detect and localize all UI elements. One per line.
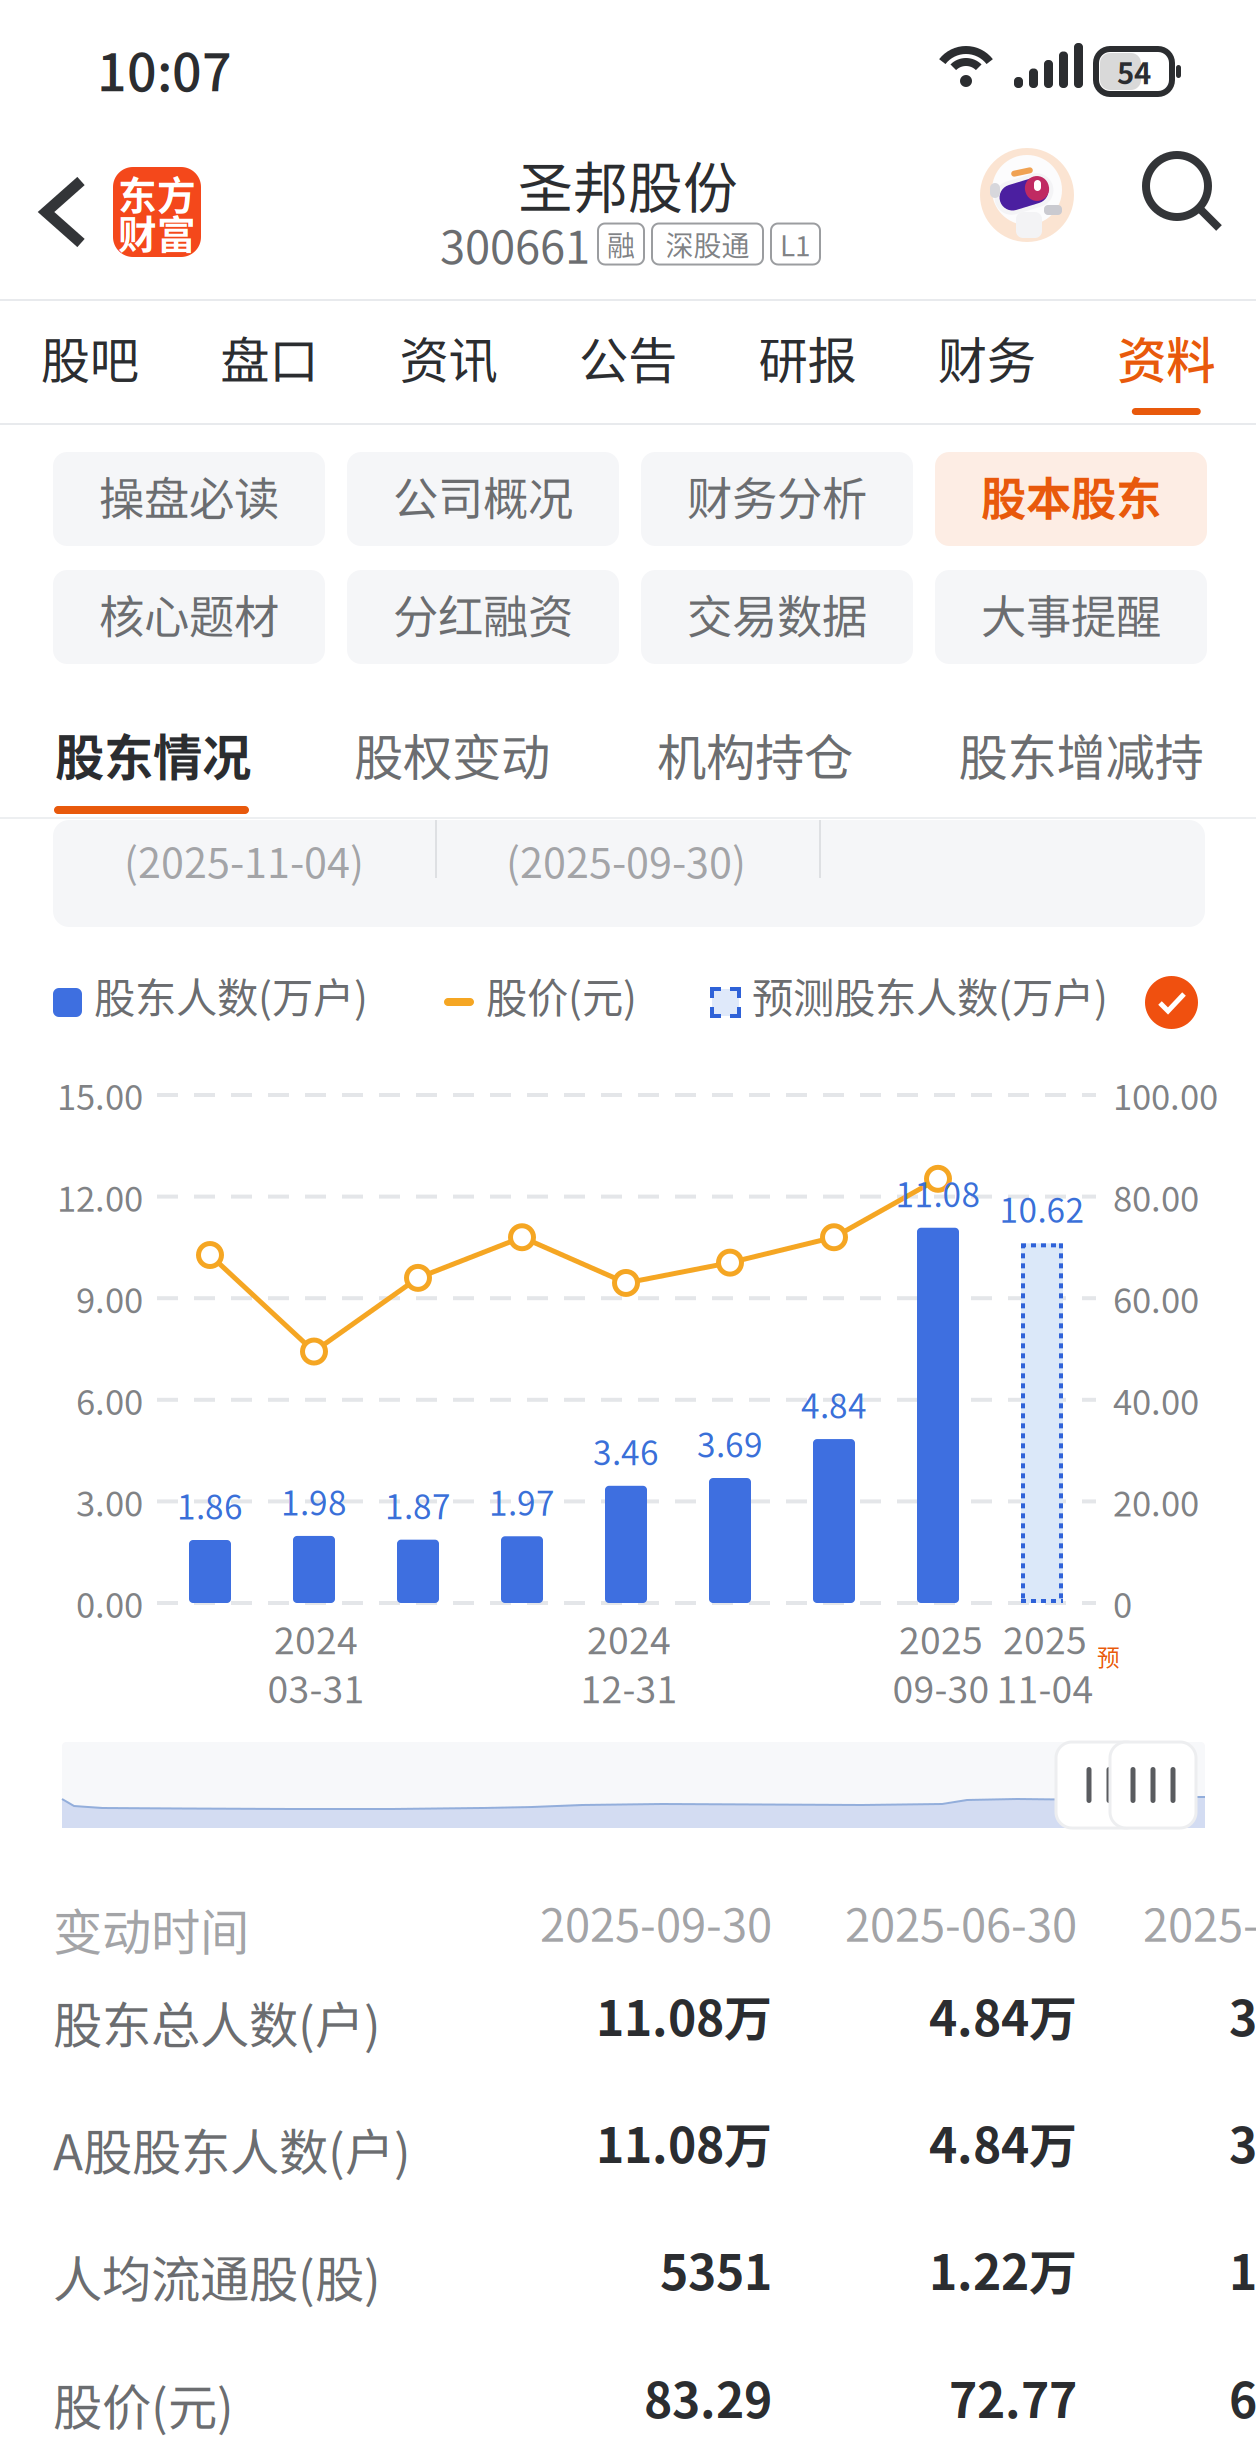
staticText: 股价(元) [53, 2368, 234, 2439]
staticText: 80.00 [1113, 1171, 1199, 1222]
staticText: L1 [780, 224, 811, 264]
staticText: 操盘必读 [99, 463, 279, 529]
staticText: (2025-11-04) [124, 830, 364, 890]
button[interactable]: 公告 [538, 301, 718, 423]
staticText: 财务 [938, 321, 1036, 393]
button[interactable]: 分红融资 [347, 570, 619, 664]
staticText: 公司概况 [393, 463, 573, 529]
staticText: 2025-06-30 [845, 1889, 1077, 1955]
staticText: 11-04 [996, 1660, 1093, 1714]
staticText: 公告 [579, 321, 677, 393]
staticText: 300661 [440, 211, 590, 277]
staticText: 机构持仓 [657, 718, 853, 790]
button[interactable]: 机构持仓 [655, 724, 855, 828]
staticText: 分红融资 [393, 581, 573, 647]
button[interactable]: East Money home [113, 167, 201, 257]
staticText: A股股东人数(户) [53, 2113, 411, 2184]
staticText: 2025 [899, 1611, 983, 1665]
staticText: 财富 [118, 204, 196, 260]
staticText: 预测股东人数(万户) [752, 965, 1108, 1025]
staticText: 融 [607, 224, 635, 264]
staticText: 3 [1229, 1980, 1256, 2050]
staticText: 0.00 [76, 1578, 143, 1628]
staticText: 变动时间 [53, 1893, 249, 1964]
button[interactable]: 研报 [718, 301, 897, 423]
button[interactable]: Assistant [980, 148, 1074, 242]
staticText: 0 [1113, 1578, 1132, 1628]
button[interactable]: Range end handle [1110, 1742, 1196, 1828]
staticText: 股权变动 [354, 718, 550, 790]
staticText: 股吧 [41, 321, 139, 393]
staticText: 1.97 [489, 1477, 555, 1525]
staticText: 03-31 [267, 1660, 364, 1714]
button[interactable]: 盘口 [179, 301, 359, 423]
staticText: 股东增减持 [958, 718, 1203, 790]
staticText: 12-31 [580, 1660, 677, 1714]
button[interactable]: Toggle forecast series [1145, 976, 1198, 1029]
staticText: 2024 [274, 1611, 358, 1665]
button[interactable]: 股权变动 [352, 724, 552, 828]
staticText: 6 [1229, 2362, 1256, 2432]
button[interactable]: 大事提醒 [935, 570, 1207, 664]
staticText: 40.00 [1113, 1375, 1199, 1425]
staticText: 20.00 [1113, 1476, 1199, 1526]
staticText: 盘口 [220, 321, 318, 393]
staticText: 11.08万 [596, 2107, 772, 2177]
staticText: 大事提醒 [981, 581, 1161, 647]
staticText: 12.00 [57, 1171, 143, 1222]
staticText: 3.46 [593, 1427, 659, 1475]
staticText: 人均流通股(股) [53, 2240, 381, 2311]
staticText: (2025-09-30) [506, 830, 746, 890]
button[interactable]: 核心题材 [53, 570, 325, 664]
staticText: 100.00 [1113, 1070, 1218, 1120]
staticText: 10.62 [999, 1184, 1084, 1232]
staticText: 9.00 [76, 1273, 143, 1323]
staticText: 2025-09-30 [540, 1889, 772, 1955]
button[interactable]: 股东增减持 [955, 724, 1207, 828]
button[interactable]: Back [18, 165, 102, 249]
staticText: 4.84 [801, 1380, 867, 1428]
staticText: 2025 [1003, 1611, 1087, 1665]
staticText: 72.77 [949, 2362, 1077, 2432]
staticText: 1.87 [385, 1480, 451, 1529]
staticText: 1.86 [177, 1481, 243, 1529]
button[interactable]: Range start handle [1056, 1742, 1142, 1828]
staticText: 资料 [1117, 321, 1215, 393]
staticText: 研报 [758, 321, 856, 393]
staticText: 股本股东 [981, 463, 1161, 529]
button[interactable]: 操盘必读 [53, 452, 325, 546]
staticText: 10:07 [97, 31, 232, 106]
button[interactable]: 股东情况 [53, 724, 253, 828]
staticText: 83.29 [644, 2362, 772, 2432]
staticText: 5351 [660, 2234, 772, 2304]
staticText: 1 [1229, 2234, 1256, 2304]
button[interactable]: 财务 [897, 301, 1076, 423]
button[interactable]: 资讯 [359, 301, 538, 423]
staticText: 1.22万 [929, 2234, 1077, 2304]
staticText: 4.84万 [929, 2107, 1077, 2177]
staticText: 2025- [1143, 1889, 1256, 1955]
button[interactable]: 资料 [1077, 301, 1256, 423]
staticText: 核心题材 [99, 581, 279, 647]
staticText: 资讯 [400, 321, 498, 393]
button[interactable]: 股吧 [0, 301, 179, 423]
button[interactable]: 财务分析 [641, 452, 913, 546]
staticText: 3.69 [697, 1419, 763, 1467]
staticText: 财务分析 [687, 463, 867, 529]
staticText: 11.08万 [596, 1980, 772, 2050]
staticText: 2024 [587, 1611, 671, 1665]
staticText: 深股通 [665, 224, 749, 264]
button[interactable]: 公司概况 [347, 452, 619, 546]
staticText: 11.08 [895, 1169, 980, 1217]
staticText: 圣邦股份 [518, 144, 738, 224]
staticText: 15.00 [57, 1070, 143, 1120]
staticText: 1.98 [281, 1477, 347, 1525]
staticText: 60.00 [1113, 1273, 1199, 1323]
staticText: 3 [1229, 2107, 1256, 2177]
staticText: 09-30 [892, 1660, 989, 1714]
button[interactable]: 交易数据 [641, 570, 913, 664]
staticText: 东方 [118, 165, 196, 221]
button[interactable]: Search [1146, 155, 1222, 231]
staticText: 股东情况 [55, 718, 251, 790]
button[interactable]: 股本股东 [935, 452, 1207, 546]
